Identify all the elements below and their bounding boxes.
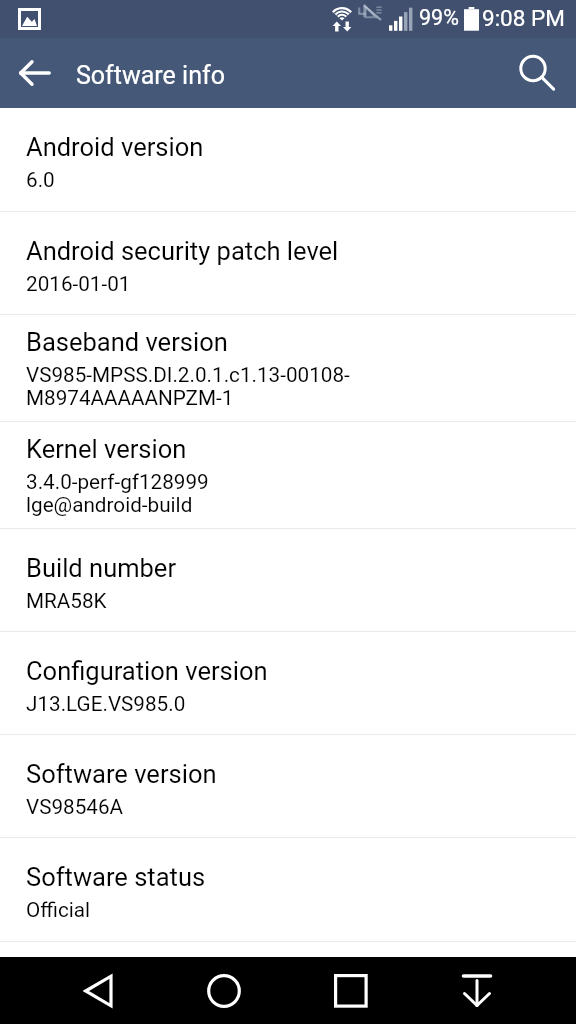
staticText: Baseband version — [26, 327, 228, 357]
staticText: Android version — [26, 132, 204, 162]
staticText: Android security patch level — [26, 236, 339, 266]
staticText: 99% — [419, 5, 459, 30]
staticText: Software info — [76, 61, 225, 90]
staticText: Kernel version — [26, 434, 187, 464]
button[interactable]: Build number — [0, 529, 576, 631]
staticText: 9:08 PM — [482, 5, 565, 31]
button[interactable]: Baseband version — [0, 315, 576, 421]
button[interactable]: Recent apps — [311, 957, 391, 1024]
button[interactable]: Back — [58, 957, 139, 1024]
staticText: Official — [26, 898, 91, 922]
staticText: Software version — [26, 759, 217, 789]
button[interactable]: Kernel version — [0, 422, 576, 528]
staticText: Software status — [26, 862, 206, 892]
staticText: MRA58K — [26, 589, 107, 613]
button[interactable]: Configuration version — [0, 632, 576, 734]
button[interactable]: Android version — [0, 108, 576, 211]
button[interactable]: Back — [0, 38, 70, 108]
staticText: J13.LGE.VS985.0 — [26, 692, 186, 716]
staticText: VS98546A — [26, 795, 124, 819]
staticText: 2016-01-01 — [26, 272, 131, 296]
staticText: Configuration version — [26, 656, 268, 686]
button[interactable]: Home — [184, 957, 264, 1024]
staticText: 6.0 — [26, 168, 55, 192]
staticText: 3.4.0-perf-gf128999 lge@android-build — [26, 470, 209, 517]
button[interactable]: Software version — [0, 735, 576, 837]
staticText: Build number — [26, 553, 177, 583]
button[interactable]: Hide navigation bar — [437, 957, 517, 1024]
button[interactable]: Android security patch level — [0, 212, 576, 314]
button[interactable]: Software status — [0, 838, 576, 941]
staticText: VS985-MPSS.DI.2.0.1.c1.13-00108- M8974AA… — [26, 363, 350, 410]
button[interactable]: Search — [506, 38, 576, 108]
